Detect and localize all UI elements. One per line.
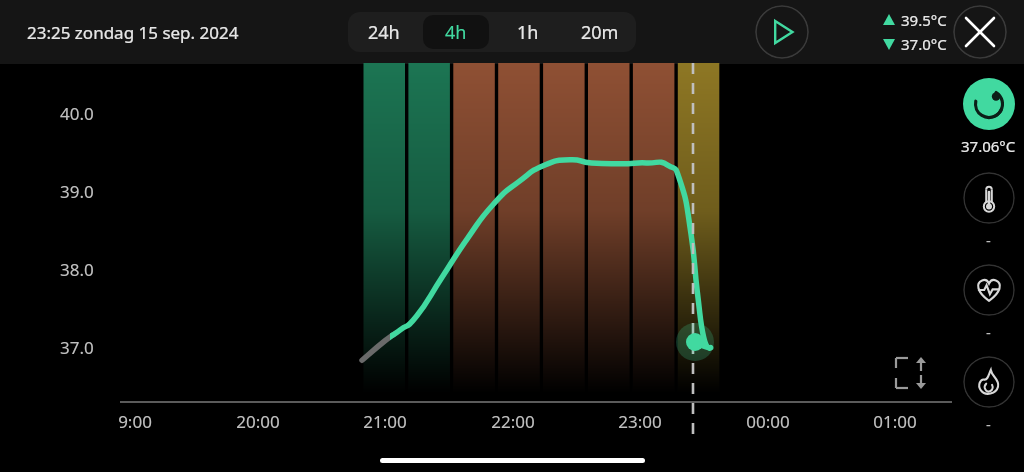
button[interactable]: Temperature sensor	[963, 78, 1015, 130]
staticText: 37.06°C	[961, 136, 1016, 156]
button[interactable]: 24h	[351, 15, 417, 49]
staticText: 1h	[517, 20, 539, 45]
staticText: 39.0	[60, 180, 94, 203]
button[interactable]: Body temperature	[963, 172, 1015, 224]
button[interactable]: Play	[755, 5, 809, 59]
button[interactable]: 20m	[567, 15, 633, 49]
staticText: 39.5°C	[901, 10, 947, 30]
staticText: 01:00	[855, 410, 935, 433]
staticText: 20:00	[218, 410, 298, 433]
button[interactable]: 1h	[495, 15, 561, 49]
staticText: 20m	[581, 20, 619, 45]
staticText: 4h	[445, 20, 467, 45]
staticText: 23:25 zondag 15 sep. 2024	[27, 21, 239, 44]
staticText: 37.0°C	[901, 34, 947, 54]
staticText: -	[986, 230, 991, 250]
button[interactable]: Calories	[963, 356, 1015, 408]
staticText: 38.0	[60, 258, 94, 281]
button[interactable]: Close	[953, 5, 1007, 59]
staticText: 9:00	[95, 410, 175, 433]
button[interactable]: Auto scale	[890, 350, 936, 396]
staticText: 22:00	[473, 410, 553, 433]
staticText: 37.0	[60, 336, 94, 359]
staticText: 00:00	[728, 410, 808, 433]
staticText: -	[986, 322, 991, 342]
staticText: 23:00	[600, 410, 680, 433]
staticText: 40.0	[60, 102, 94, 125]
button[interactable]: Heart rate	[963, 264, 1015, 316]
button[interactable]: 4h	[423, 15, 489, 49]
staticText: -	[986, 414, 991, 434]
staticText: 21:00	[345, 410, 425, 433]
staticText: 24h	[368, 20, 400, 45]
